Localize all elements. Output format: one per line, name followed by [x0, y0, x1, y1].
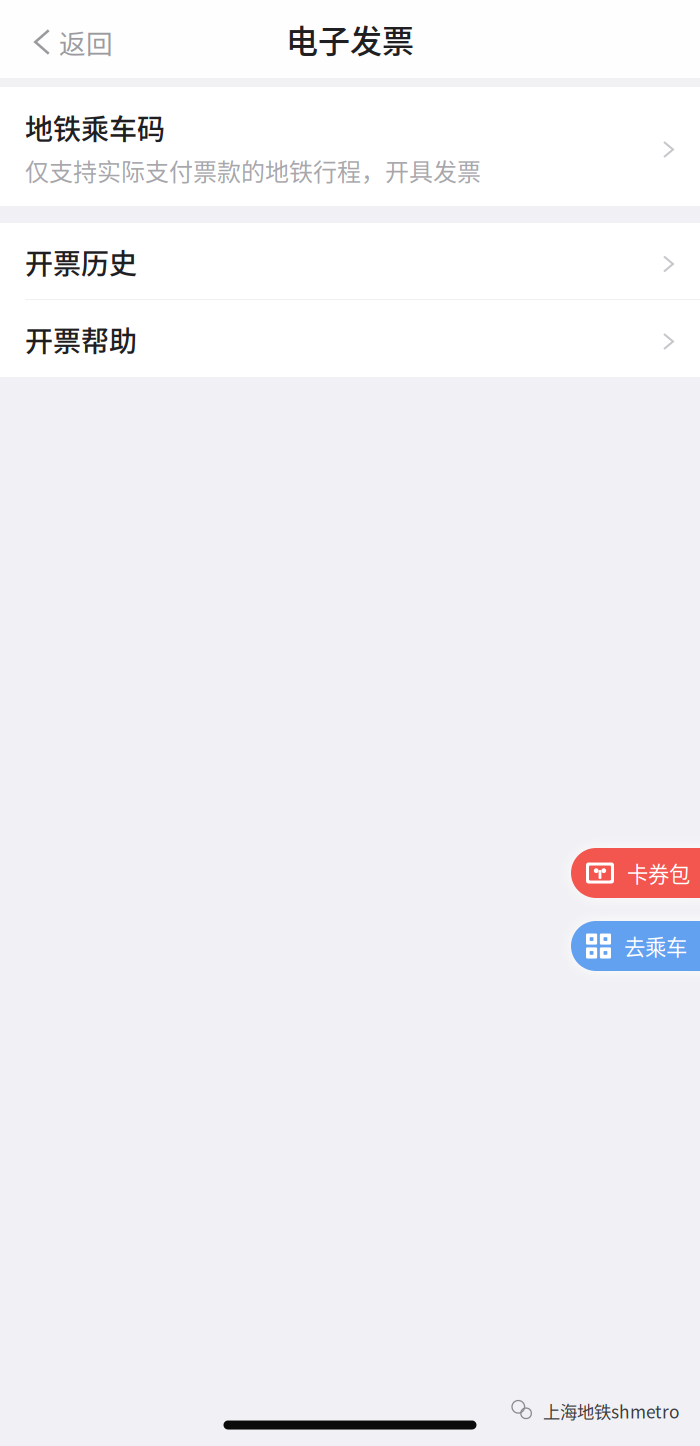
- staticText: 电子发票: [286, 16, 414, 62]
- staticText: 地铁乘车码: [25, 107, 165, 148]
- staticText: 返回: [59, 23, 113, 61]
- staticText: 开票历史: [25, 242, 137, 282]
- button[interactable]: 返回: [0, 6, 133, 72]
- button[interactable]: 地铁乘车码: [0, 87, 700, 206]
- staticText: 上海地铁shmetro: [543, 1398, 680, 1424]
- staticText: 去乘车: [624, 931, 687, 961]
- button[interactable]: 开票帮助: [0, 300, 700, 377]
- staticText: 卡券包: [627, 858, 690, 888]
- staticText: 仅支持实际支付票款的地铁行程，开具发票: [25, 153, 481, 188]
- button[interactable]: 去乘车: [571, 921, 700, 971]
- staticText: 开票帮助: [25, 319, 137, 360]
- button[interactable]: 卡券包: [571, 848, 700, 898]
- button[interactable]: 开票历史: [0, 223, 700, 299]
